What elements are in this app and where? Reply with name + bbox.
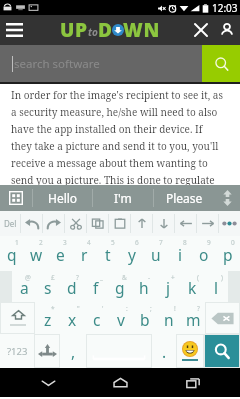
- button[interactable]: Move right: [197, 211, 218, 236]
- button[interactable]: Paste: [109, 211, 130, 236]
- button[interactable]: ?123: [0, 334, 34, 368]
- button[interactable]: *: [35, 302, 60, 334]
- staticText: (: [197, 273, 199, 282]
- button[interactable]: Expand suggestions: [214, 185, 240, 211]
- button[interactable]: ;: [133, 302, 157, 334]
- staticText: 4: [87, 238, 91, 247]
- staticText: 1: [15, 238, 19, 247]
- staticText: y: [128, 244, 136, 265]
- staticText: to: [88, 25, 98, 39]
- button[interactable]: (: [180, 271, 204, 302]
- staticText: .: [162, 341, 167, 362]
- staticText: l: [214, 277, 218, 298]
- button[interactable]: I'm: [93, 185, 153, 211]
- button[interactable]: Move cursor: [35, 335, 59, 367]
- staticText: w: [30, 244, 43, 265]
- staticText: u: [151, 244, 161, 265]
- staticText: 12:03: [212, 1, 238, 15]
- button[interactable]: -: [132, 271, 156, 302]
- staticText: ?: [197, 304, 200, 313]
- staticText: 9: [207, 238, 211, 247]
- button[interactable]: 8: [168, 236, 192, 271]
- staticText: n: [164, 309, 174, 330]
- button[interactable]: £: [36, 271, 60, 302]
- staticText: s: [44, 277, 52, 298]
- button[interactable]: 7: [144, 236, 168, 271]
- button[interactable]: 1: [0, 236, 24, 271]
- button[interactable]: 6: [120, 236, 144, 271]
- button[interactable]: Move left: [175, 211, 196, 236]
- staticText: I'm: [114, 190, 132, 206]
- staticText: c: [93, 309, 101, 330]
- button[interactable]: More options: [219, 211, 240, 236]
- button[interactable]: Recent apps: [168, 368, 218, 397]
- button[interactable]: Shift: [1, 303, 34, 333]
- button[interactable]: 5: [96, 236, 120, 271]
- staticText: 0: [231, 238, 235, 247]
- button[interactable]: Account: [214, 15, 240, 45]
- button[interactable]: Hello: [33, 185, 92, 211]
- button[interactable]: Move down: [153, 211, 174, 236]
- button[interactable]: search software: [0, 45, 202, 82]
- button[interactable]: Keyboard layout: [0, 185, 32, 211]
- button[interactable]: Copy: [87, 211, 108, 236]
- button[interactable]: :: [109, 302, 133, 334]
- button[interactable]: Search: [205, 335, 239, 367]
- button[interactable]: 4: [72, 236, 96, 271]
- staticText: e: [56, 244, 65, 265]
- button[interactable]: !: [157, 302, 181, 334]
- button[interactable]: 3: [48, 236, 72, 271]
- button[interactable]: Home: [95, 368, 145, 397]
- staticText: m: [186, 309, 201, 330]
- button[interactable]: Del: [0, 211, 20, 236]
- staticText: &: [122, 273, 127, 282]
- staticText: Hello: [48, 190, 78, 206]
- button[interactable]: ": [60, 302, 85, 334]
- staticText: ': [102, 304, 104, 313]
- button[interactable]: Menu: [0, 15, 28, 45]
- button[interactable]: Close: [188, 15, 214, 45]
- staticText: a: [20, 277, 29, 298]
- button[interactable]: Search: [202, 45, 240, 82]
- button[interactable]: Move up: [131, 211, 152, 236]
- staticText: 3: [63, 238, 67, 247]
- staticText: t: [105, 244, 111, 265]
- button[interactable]: ': [85, 302, 109, 334]
- button[interactable]: ,: [60, 334, 86, 368]
- button[interactable]: Back: [23, 368, 73, 397]
- button[interactable]: Emoji: [177, 335, 203, 367]
- staticText: In order for the image's recipient to se…: [11, 88, 224, 185]
- button[interactable]: &: [108, 271, 132, 302]
- staticText: v: [117, 309, 125, 330]
- staticText: ?123: [7, 345, 28, 358]
- staticText: 5: [111, 238, 115, 247]
- button[interactable]: _: [84, 271, 108, 302]
- staticText: r: [81, 244, 88, 265]
- button[interactable]: +: [156, 271, 180, 302]
- staticText: search software: [14, 56, 100, 72]
- button[interactable]: 2: [24, 236, 48, 271]
- staticText: D: [98, 17, 112, 43]
- button[interactable]: 0: [216, 236, 240, 271]
- button[interactable]: .: [152, 334, 176, 368]
- staticText: _: [100, 273, 103, 282]
- staticText: UP: [60, 17, 88, 43]
- button[interactable]: Cut: [65, 211, 86, 236]
- button[interactable]: ): [204, 271, 228, 302]
- button[interactable]: ?: [181, 302, 205, 334]
- button[interactable]: @: [12, 271, 36, 302]
- staticText: z: [44, 309, 52, 330]
- staticText: f: [93, 277, 99, 298]
- staticText: ,: [71, 341, 76, 362]
- staticText: WN: [123, 17, 161, 43]
- staticText: Please: [166, 190, 203, 206]
- staticText: p: [223, 244, 233, 265]
- button[interactable]: 9: [192, 236, 216, 271]
- button[interactable]: Please: [154, 185, 214, 211]
- button[interactable]: Undo: [21, 211, 42, 236]
- button[interactable]: Backspace: [206, 303, 239, 333]
- button[interactable]: ?: [60, 271, 84, 302]
- button[interactable]: Redo: [43, 211, 64, 236]
- staticText: 6: [135, 238, 139, 247]
